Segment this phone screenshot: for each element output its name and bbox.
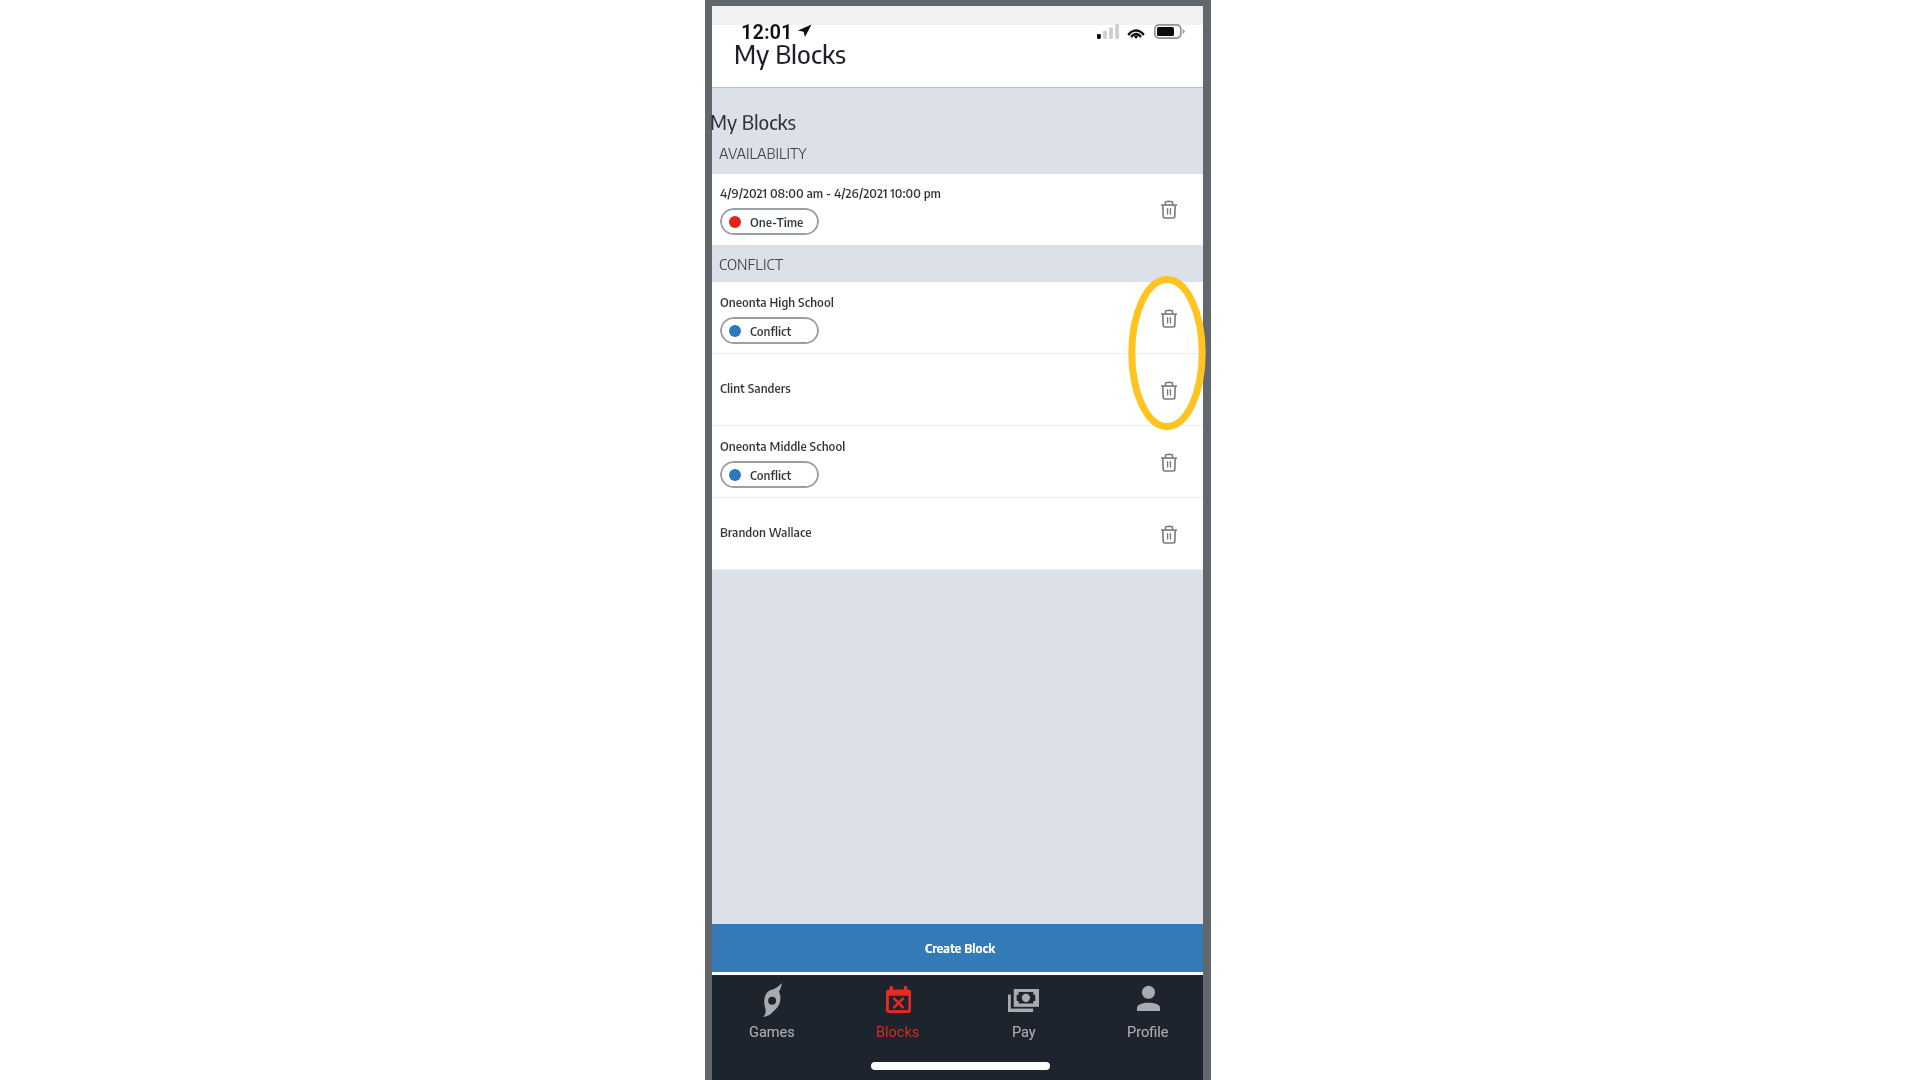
- button[interactable]: Brandon Wallace: [712, 498, 1203, 570]
- staticText: Oneonta High School: [720, 294, 834, 310]
- staticText: Oneonta Middle School: [720, 438, 846, 454]
- staticText: My Blocks: [710, 109, 797, 134]
- button[interactable]: Delete availability block: [1161, 201, 1177, 218]
- staticText: Conflict: [750, 467, 792, 483]
- staticText: 12:01: [741, 20, 793, 43]
- staticText: Clint Sanders: [720, 380, 791, 396]
- staticText: Profile: [1127, 1024, 1169, 1041]
- staticText: Brandon Wallace: [720, 524, 812, 540]
- staticText: Create Block: [925, 940, 996, 956]
- button[interactable]: Profile: [1087, 975, 1209, 1051]
- staticText: Pay: [1012, 1024, 1036, 1041]
- staticText: Games: [749, 1024, 795, 1041]
- button[interactable]: Pay: [962, 975, 1084, 1051]
- staticText: CONFLICT: [719, 254, 784, 273]
- button[interactable]: Delete Oneonta High School: [1161, 310, 1177, 327]
- staticText: 4/9/2021 08:00 am - 4/26/2021 10:00 pm: [720, 185, 941, 201]
- staticText: My Blocks: [734, 37, 846, 69]
- button[interactable]: Delete Brandon Wallace: [1161, 526, 1177, 543]
- button[interactable]: Conflict: [720, 461, 819, 488]
- button[interactable]: Delete Oneonta Middle School: [1161, 454, 1177, 471]
- button[interactable]: Oneonta Middle School: [712, 426, 1203, 498]
- button[interactable]: Delete Clint Sanders: [1161, 382, 1177, 399]
- staticText: Blocks: [876, 1024, 920, 1041]
- staticText: AVAILABILITY: [719, 144, 807, 163]
- button[interactable]: Create Block: [712, 924, 1203, 972]
- staticText: Conflict: [750, 323, 792, 339]
- button[interactable]: One-Time: [720, 208, 819, 235]
- button[interactable]: Clint Sanders: [712, 354, 1203, 426]
- button[interactable]: Games: [711, 975, 833, 1051]
- button[interactable]: Oneonta High School: [712, 282, 1203, 354]
- button[interactable]: Conflict: [720, 317, 819, 344]
- button[interactable]: Blocks: [837, 975, 959, 1051]
- staticText: One-Time: [750, 214, 804, 230]
- button[interactable]: 4/9/2021 08:00 am - 4/26/2021 10:00 pm: [712, 174, 1203, 245]
